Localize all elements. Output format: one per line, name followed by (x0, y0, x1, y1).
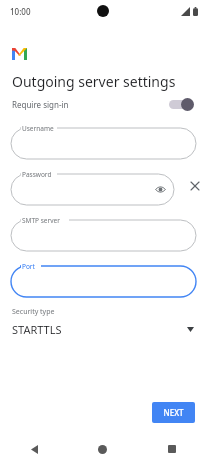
button[interactable]: SMTP server (11, 213, 196, 251)
button[interactable]: Security type (0, 307, 206, 337)
staticText: Outgoing server settings (12, 72, 176, 91)
button[interactable]: Password (11, 167, 174, 205)
staticText: NEXT (163, 407, 184, 418)
staticText: STARTTLS (12, 322, 62, 337)
button[interactable]: Home (68, 437, 137, 461)
button[interactable]: Back (0, 437, 68, 461)
staticText: Port (22, 262, 35, 271)
staticText: Username (22, 124, 54, 133)
staticText: SMTP server (22, 216, 60, 225)
button[interactable]: Port (11, 259, 196, 297)
staticText: 10:00 (10, 6, 31, 17)
button[interactable]: NEXT (152, 402, 195, 423)
button[interactable]: Show password (153, 182, 167, 196)
button[interactable]: Clear password (184, 169, 206, 203)
button[interactable]: Username (11, 121, 196, 159)
button[interactable]: Require sign-in (0, 91, 206, 117)
button[interactable]: Recent apps (137, 437, 206, 461)
staticText: Require sign-in (12, 99, 69, 110)
staticText: Password (22, 170, 52, 179)
staticText: Security type (12, 307, 55, 317)
